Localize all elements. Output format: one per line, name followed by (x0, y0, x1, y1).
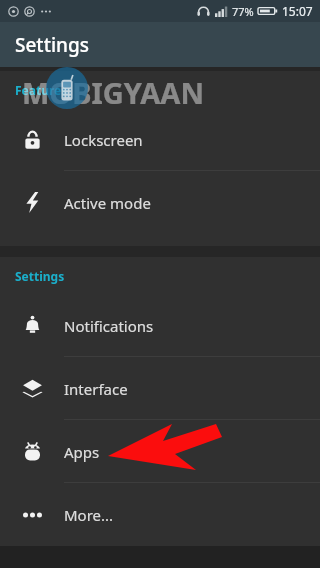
button[interactable]: Active mode (0, 171, 320, 234)
button[interactable]: Notifications (0, 294, 320, 357)
staticText: Features (15, 82, 68, 98)
staticText: Apps (64, 442, 100, 462)
button[interactable]: Lockscreen (0, 108, 320, 171)
staticText: Lockscreen (64, 130, 143, 150)
staticText: Settings (15, 32, 89, 58)
button[interactable]: Apps (0, 420, 320, 483)
button[interactable]: Interface (0, 357, 320, 420)
staticText: Settings (15, 268, 65, 284)
staticText: Interface (64, 379, 128, 399)
staticText: Active mode (64, 193, 151, 213)
staticText: More... (64, 505, 114, 525)
staticText: 77% (232, 4, 254, 19)
button[interactable]: More... (0, 483, 320, 546)
staticText: 15:07 (282, 3, 313, 19)
staticText: MOBIGYAAN (22, 73, 298, 112)
staticText: Notifications (64, 316, 154, 336)
